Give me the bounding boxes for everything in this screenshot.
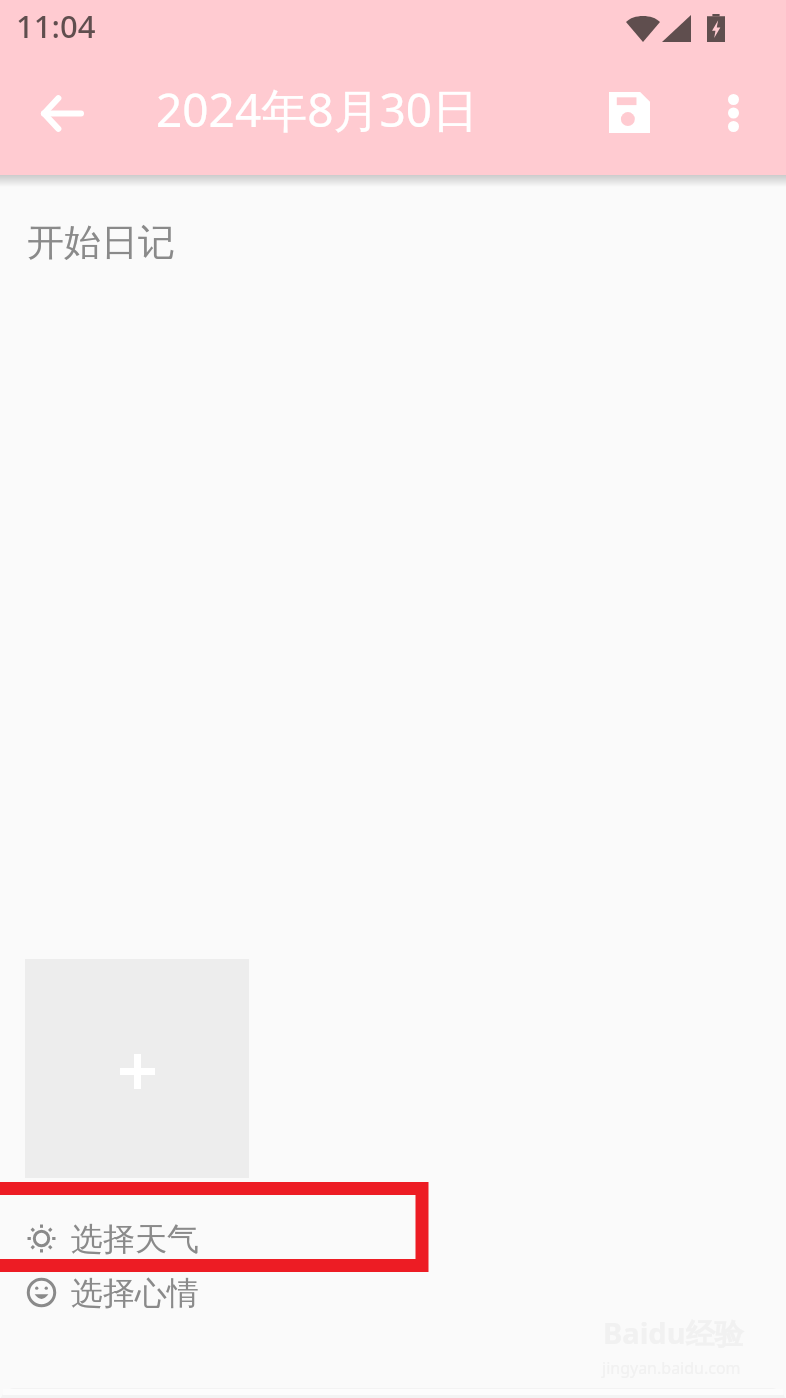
staticText: 2024年8月30日: [156, 78, 479, 141]
button[interactable]: Back: [30, 82, 92, 144]
staticText: 选择天气: [71, 1219, 199, 1259]
staticText: 11:04: [16, 5, 96, 47]
button[interactable]: 开始日记: [0, 187, 786, 947]
staticText: 开始日记: [27, 219, 175, 266]
staticText: 选择心情: [71, 1273, 199, 1313]
button[interactable]: Save: [598, 81, 660, 143]
button[interactable]: More options: [702, 82, 764, 144]
staticText: Baidu经验: [603, 1313, 744, 1353]
staticText: jingyan.baidu.com: [602, 1357, 741, 1379]
button[interactable]: 选择天气: [0, 1210, 786, 1267]
button[interactable]: 选择心情: [0, 1264, 786, 1321]
